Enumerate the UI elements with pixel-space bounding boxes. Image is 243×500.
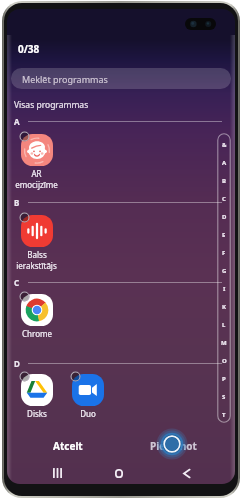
button[interactable]: Disks bbox=[13, 374, 60, 419]
button[interactable]: Recent apps bbox=[44, 460, 70, 484]
staticText: emocijzīme bbox=[15, 179, 58, 190]
staticText: K bbox=[222, 303, 226, 311]
staticText: D bbox=[14, 358, 20, 369]
staticText: Meklēt programmas bbox=[22, 73, 108, 85]
staticText: Duo bbox=[80, 408, 96, 419]
button[interactable]: Atcelt bbox=[13, 431, 123, 461]
button[interactable]: Home bbox=[106, 460, 132, 484]
staticText: C bbox=[222, 195, 226, 203]
staticText: 0/38 bbox=[18, 42, 40, 56]
staticText: G bbox=[222, 267, 227, 275]
button[interactable]: Pievienot bbox=[118, 431, 228, 461]
staticText: B bbox=[222, 177, 226, 185]
staticText: Disks bbox=[27, 408, 47, 419]
staticText: P bbox=[222, 375, 226, 383]
button[interactable]: Duo bbox=[64, 374, 111, 419]
staticText: AR bbox=[31, 168, 42, 179]
button[interactable]: Meklēt programmas bbox=[11, 68, 231, 89]
staticText: B bbox=[14, 197, 20, 208]
staticText: D bbox=[222, 213, 227, 221]
staticText: S bbox=[222, 393, 226, 401]
staticText: Visas programmas bbox=[14, 99, 89, 111]
staticText: Atcelt bbox=[53, 439, 83, 453]
staticText: & bbox=[222, 141, 227, 149]
staticText: O bbox=[222, 357, 227, 365]
staticText: A bbox=[14, 116, 20, 127]
button[interactable]: Back bbox=[173, 460, 199, 484]
button[interactable]: Balss bbox=[13, 215, 60, 271]
button[interactable]: Chrome bbox=[13, 294, 60, 339]
staticText: E bbox=[222, 231, 226, 239]
staticText: Pievienot bbox=[150, 439, 197, 453]
staticText: Chrome bbox=[22, 328, 52, 339]
staticText: ierakstītājs bbox=[16, 260, 57, 271]
button[interactable]: Alphabet index bbox=[217, 133, 231, 423]
staticText: I bbox=[223, 285, 226, 293]
staticText: A bbox=[222, 159, 227, 167]
button[interactable]: AR bbox=[13, 134, 60, 190]
staticText: C bbox=[14, 277, 20, 288]
staticText: Balss bbox=[27, 249, 47, 260]
staticText: M bbox=[221, 339, 227, 347]
staticText: T bbox=[222, 411, 226, 419]
staticText: F bbox=[222, 249, 226, 257]
staticText: L bbox=[222, 321, 226, 329]
